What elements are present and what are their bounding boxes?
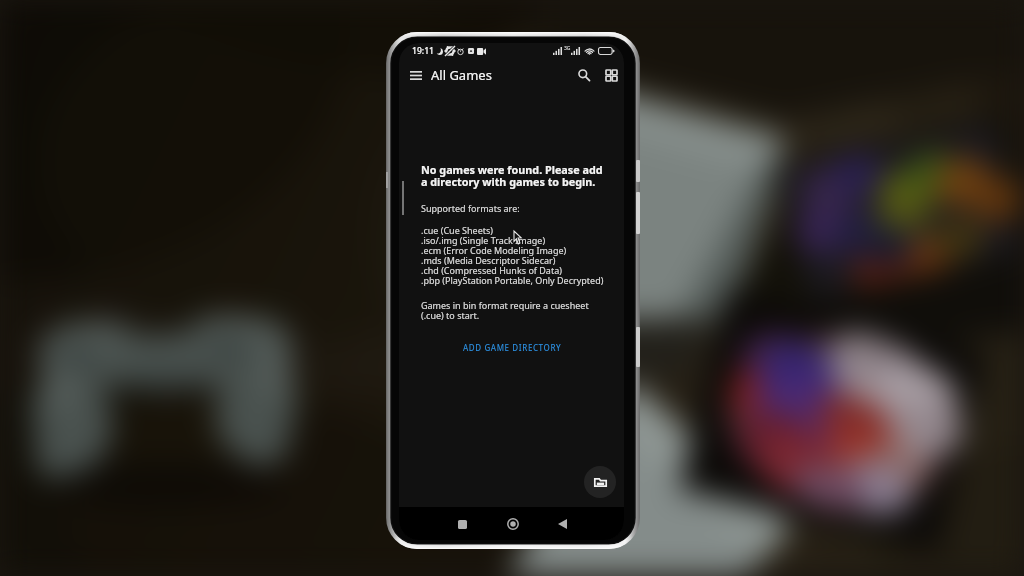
staticText: 3G	[564, 45, 571, 52]
button[interactable]: Open navigation drawer	[403, 62, 429, 88]
button[interactable]: Switch view layout	[598, 62, 624, 88]
button[interactable]: Home	[499, 510, 527, 538]
staticText: 19:11	[412, 45, 435, 57]
staticText: .cue (Cue Sheets) .iso/.img (Single Trac…	[421, 224, 604, 287]
button[interactable]: ADD GAME DIRECTORY	[455, 338, 570, 357]
staticText: No games were found. Please add a direct…	[421, 162, 606, 190]
staticText: Supported formats are:	[421, 202, 520, 214]
button[interactable]: Recent apps	[448, 510, 476, 538]
staticText: All Games	[431, 66, 492, 84]
button[interactable]: Add game directory	[584, 466, 616, 498]
staticText: ADD GAME DIRECTORY	[463, 342, 562, 353]
staticText: Games in bin format require a cuesheet (…	[421, 299, 606, 322]
button[interactable]: Search	[571, 62, 597, 88]
button[interactable]: Back	[548, 510, 576, 538]
